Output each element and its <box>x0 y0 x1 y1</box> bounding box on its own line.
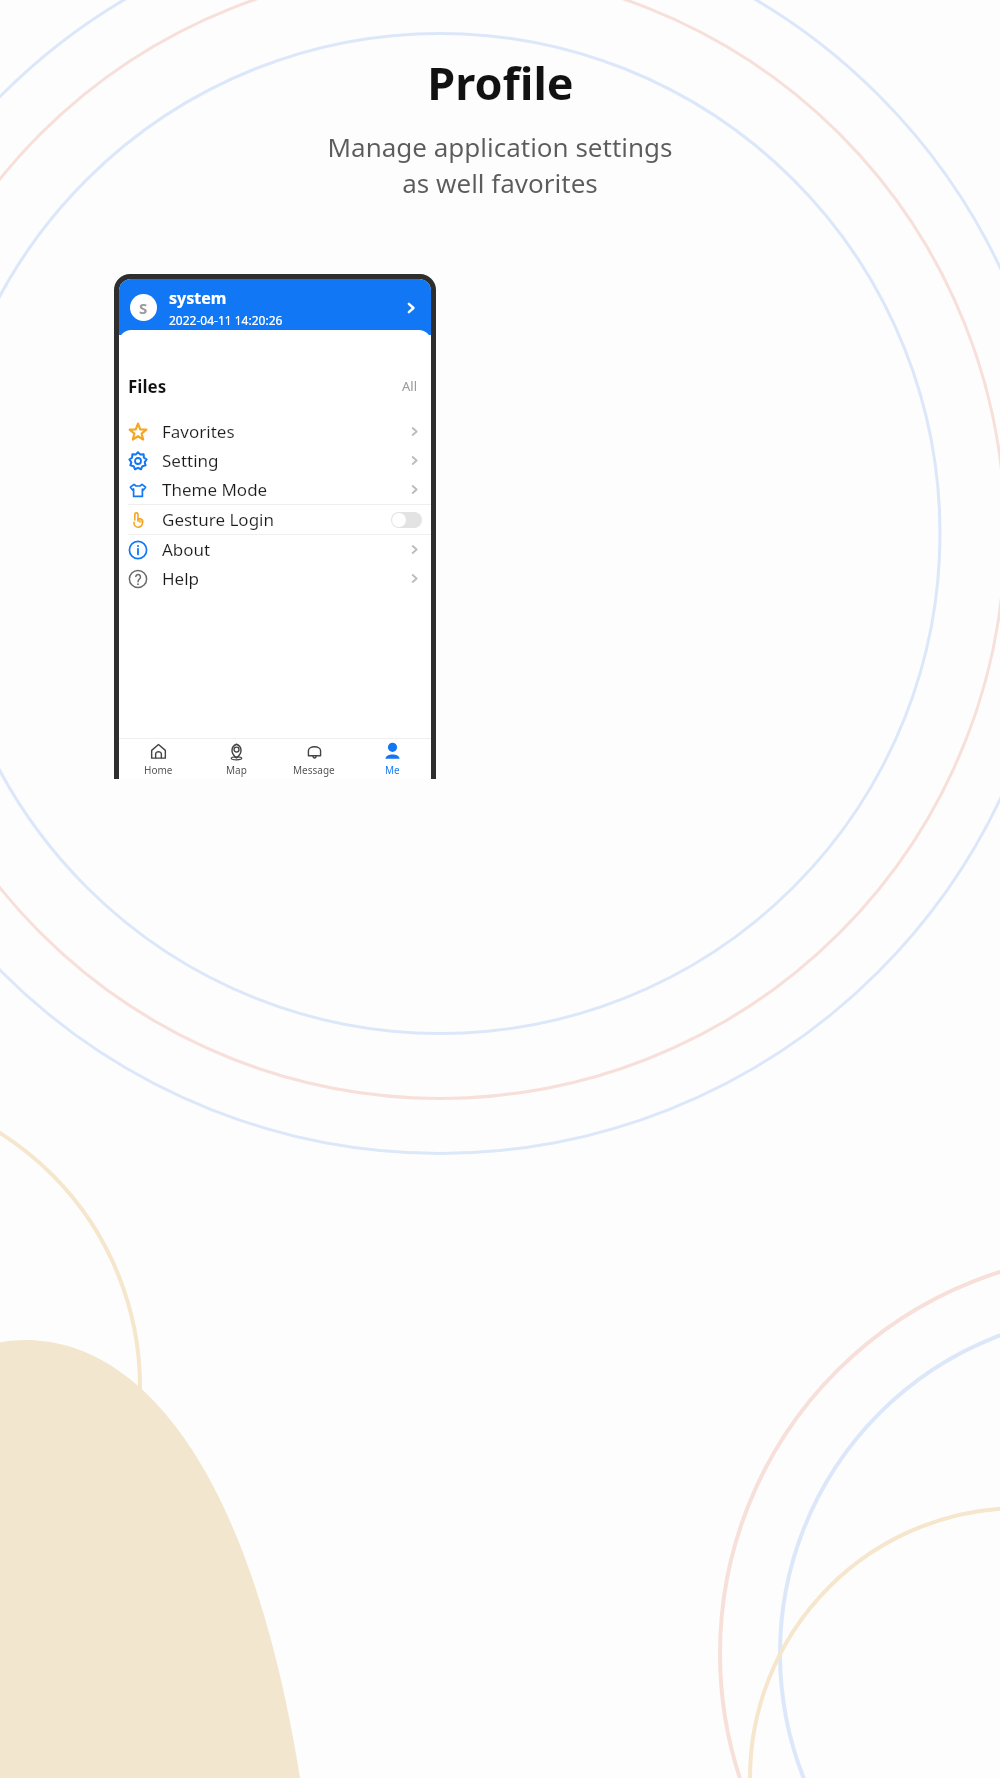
staticText: Home <box>144 763 173 777</box>
button[interactable]: Me <box>353 739 431 779</box>
staticText: Gesture Login <box>162 508 274 531</box>
staticText: Profile <box>427 52 574 113</box>
staticText: S <box>139 298 148 318</box>
button[interactable]: S <box>119 279 431 335</box>
staticText: system <box>169 287 227 309</box>
staticText: Files <box>128 375 167 398</box>
staticText: Message <box>293 763 335 777</box>
button[interactable]: Help <box>119 564 431 593</box>
button[interactable]: Home <box>119 739 197 779</box>
button[interactable]: About <box>119 535 431 564</box>
staticText: Map <box>226 763 247 777</box>
button[interactable]: Theme Mode <box>119 475 431 504</box>
staticText: All <box>402 377 418 395</box>
button[interactable]: Setting <box>119 446 431 475</box>
staticText: Favorites <box>162 420 235 443</box>
button[interactable]: Message <box>275 739 353 779</box>
button[interactable]: All <box>398 373 422 399</box>
staticText: Setting <box>162 449 219 472</box>
button[interactable]: Gesture login toggle <box>391 512 422 528</box>
staticText: Theme Mode <box>162 478 268 501</box>
staticText: Me <box>385 763 400 777</box>
staticText: Help <box>162 567 200 590</box>
button[interactable]: Favorites <box>119 417 431 446</box>
staticText: About <box>162 538 211 561</box>
staticText: Manage application settings as well favo… <box>315 129 685 201</box>
button[interactable]: Map <box>197 739 275 779</box>
staticText: 2022-04-11 14:20:26 <box>169 312 283 328</box>
button[interactable]: Gesture Login <box>119 505 431 534</box>
